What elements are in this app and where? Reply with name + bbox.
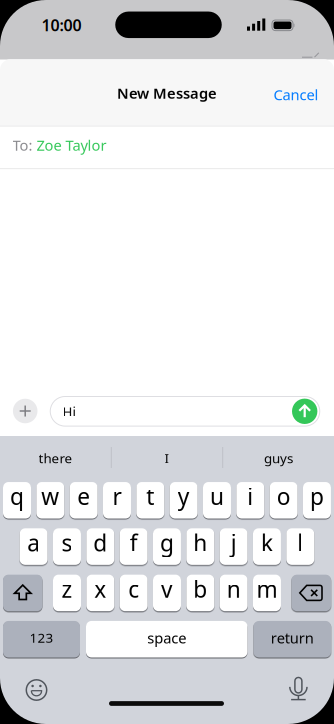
staticText: there: [39, 449, 73, 467]
button[interactable]: Emoji: [26, 680, 47, 700]
staticText: c: [128, 574, 139, 604]
button[interactable]: v: [153, 575, 181, 611]
staticText: a: [27, 527, 40, 558]
button[interactable]: I: [112, 441, 222, 475]
staticText: o: [277, 481, 291, 511]
staticText: z: [61, 574, 72, 604]
button[interactable]: x: [86, 575, 114, 611]
button[interactable]: e: [70, 482, 98, 519]
button[interactable]: l: [286, 528, 314, 565]
staticText: d: [93, 527, 107, 558]
staticText: n: [227, 574, 241, 604]
staticText: g: [160, 527, 174, 558]
staticText: s: [61, 527, 72, 558]
button[interactable]: q: [3, 482, 31, 519]
staticText: f: [130, 527, 138, 558]
button[interactable]: Delete: [291, 575, 331, 611]
staticText: To:: [12, 135, 32, 155]
staticText: r: [112, 481, 121, 511]
staticText: p: [310, 481, 324, 511]
button[interactable]: Zoe Taylor: [36, 135, 106, 155]
button[interactable]: o: [270, 482, 298, 519]
button[interactable]: g: [153, 528, 181, 565]
staticText: return: [271, 628, 314, 647]
button[interactable]: c: [120, 575, 148, 611]
button[interactable]: b: [186, 575, 214, 611]
button[interactable]: f: [120, 528, 148, 565]
button[interactable]: d: [86, 528, 114, 565]
button[interactable]: n: [220, 575, 248, 611]
staticText: u: [210, 481, 224, 511]
button[interactable]: Send: [292, 399, 317, 424]
button[interactable]: u: [203, 482, 231, 519]
button[interactable]: 123: [3, 621, 80, 657]
button[interactable]: s: [53, 528, 81, 565]
button[interactable]: Add attachment: [13, 399, 37, 423]
staticText: w: [41, 481, 59, 511]
button[interactable]: h: [186, 528, 214, 565]
staticText: Cancel: [273, 85, 318, 104]
staticText: space: [147, 628, 186, 647]
button[interactable]: p: [303, 482, 331, 519]
staticText: New Message: [117, 83, 217, 103]
staticText: h: [193, 527, 207, 558]
button[interactable]: Cancel: [273, 85, 318, 104]
button[interactable]: m: [253, 575, 281, 611]
staticText: guys: [264, 449, 293, 467]
button[interactable]: y: [170, 482, 198, 519]
button[interactable]: guys: [223, 441, 333, 475]
staticText: m: [256, 574, 277, 604]
button[interactable]: return: [253, 621, 331, 657]
staticText: b: [193, 574, 207, 604]
button[interactable]: r: [103, 482, 131, 519]
button[interactable]: Dictate: [288, 677, 308, 700]
button[interactable]: w: [36, 482, 64, 519]
staticText: v: [161, 574, 173, 604]
button[interactable]: t: [136, 482, 164, 519]
staticText: k: [261, 527, 273, 558]
button[interactable]: there: [1, 441, 111, 475]
staticText: y: [178, 481, 190, 511]
staticText: 123: [29, 629, 53, 646]
staticText: l: [297, 527, 303, 558]
button[interactable]: Message field: [50, 396, 320, 426]
staticText: 10:00: [41, 14, 81, 36]
staticText: t: [146, 481, 154, 511]
button[interactable]: i: [236, 482, 264, 519]
staticText: Hi: [62, 402, 75, 420]
button[interactable]: Shift: [3, 575, 42, 611]
button[interactable]: j: [220, 528, 248, 565]
staticText: i: [247, 481, 253, 511]
button[interactable]: a: [20, 528, 48, 565]
staticText: I: [164, 449, 169, 467]
button[interactable]: z: [53, 575, 81, 611]
staticText: e: [77, 481, 90, 511]
staticText: j: [231, 527, 237, 558]
staticText: q: [10, 481, 24, 511]
button[interactable]: space: [86, 621, 247, 657]
button[interactable]: k: [253, 528, 281, 565]
staticText: x: [94, 574, 106, 604]
staticText: Zoe Taylor: [36, 135, 106, 155]
